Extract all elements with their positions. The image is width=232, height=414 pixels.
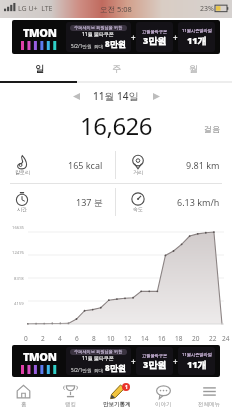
button[interactable]: Previous day xyxy=(67,87,85,105)
staticText: 1 xyxy=(125,384,128,391)
staticText: 11월 14일 xyxy=(93,89,139,103)
staticText: 11개 xyxy=(187,358,207,370)
staticText: 홈 xyxy=(21,401,27,408)
button[interactable]: TMON xyxy=(12,345,220,377)
staticText: 주 xyxy=(112,63,121,74)
button[interactable]: 이야기 xyxy=(140,378,186,414)
staticText: 12 xyxy=(124,334,132,343)
staticText: 137 분 xyxy=(76,196,103,208)
button[interactable]: 시간 xyxy=(0,184,115,220)
button[interactable]: 랭킹 xyxy=(47,378,94,414)
staticText: 고월물락구온 xyxy=(142,29,168,34)
staticText: 시간 xyxy=(17,206,27,212)
staticText: 수퍼세이브 회원님을 위한 xyxy=(74,349,123,355)
staticText: 18 xyxy=(175,334,183,343)
button[interactable]: 일 xyxy=(0,56,78,81)
button[interactable]: TMON xyxy=(12,20,220,54)
staticText: 14 xyxy=(141,334,149,343)
staticText: + xyxy=(173,356,178,367)
staticText: 11월 물타쿠폰 xyxy=(82,31,115,38)
staticText: 전체메뉴 xyxy=(198,401,220,408)
staticText: 일 xyxy=(35,63,44,74)
staticText: 16 xyxy=(158,334,166,343)
staticText: 4 xyxy=(58,334,62,343)
staticText: 랭킹 xyxy=(65,401,76,408)
staticText: 속도 xyxy=(133,206,143,212)
staticText: 만보기통계 xyxy=(103,401,131,408)
staticText: 8318 xyxy=(14,276,24,282)
staticText: 11월 물타쿠폰 xyxy=(82,355,115,362)
staticText: + xyxy=(131,356,136,367)
staticText: 16,626 xyxy=(80,109,153,141)
staticText: 수퍼세이브 회원님을 위한 xyxy=(74,25,123,31)
staticText: 3만원 xyxy=(143,358,167,370)
staticText: 고월물락구온 xyxy=(142,353,168,358)
staticText: 5/2/1만원 최대 xyxy=(71,43,105,49)
staticText: 22 xyxy=(209,334,217,343)
staticText: + xyxy=(131,32,136,43)
staticText: 3만원 xyxy=(143,34,167,46)
button[interactable]: 홈 xyxy=(0,378,47,414)
staticText: TMON xyxy=(23,25,57,40)
button[interactable]: 전체메뉴 xyxy=(186,378,232,414)
staticText: 11월시즌열라덜 xyxy=(182,352,212,358)
staticText: 월 xyxy=(189,63,198,74)
staticText: 9.81 km xyxy=(186,159,220,171)
staticText: 2 xyxy=(41,334,45,343)
staticText: 5/2/1만원 최대 xyxy=(71,367,105,373)
button[interactable]: 칼로리 xyxy=(0,147,115,183)
staticText: 이야기 xyxy=(155,401,172,408)
staticText: 11월시즌열라덜 xyxy=(182,28,212,34)
staticText: 10 xyxy=(107,334,115,343)
staticText: 12476 xyxy=(12,250,24,256)
staticText: 칼로리 xyxy=(15,169,30,175)
staticText: 거리 xyxy=(133,169,143,175)
button[interactable]: 거리 xyxy=(116,147,232,183)
staticText: 4159 xyxy=(14,301,24,307)
staticText: LG U+ LTE xyxy=(18,4,53,14)
staticText: + xyxy=(173,32,178,43)
staticText: 8만원 xyxy=(105,362,126,373)
staticText: 6 xyxy=(75,334,79,343)
staticText: 24 xyxy=(222,334,230,343)
staticText: 20 xyxy=(192,334,200,343)
staticText: 6.13 km/h xyxy=(177,196,220,208)
staticText: 오전 5:08 xyxy=(100,4,132,14)
staticText: 0 xyxy=(24,334,28,343)
staticText: TMON xyxy=(23,349,57,364)
staticText: 16635 xyxy=(12,225,24,231)
staticText: 8만원 xyxy=(105,38,126,49)
staticText: 8 xyxy=(92,334,96,343)
button[interactable]: 월 xyxy=(155,56,232,81)
button[interactable]: 주 xyxy=(78,56,155,81)
button[interactable]: 속도 xyxy=(116,184,232,220)
button[interactable]: Next day xyxy=(147,87,165,105)
staticText: 11개 xyxy=(187,34,207,46)
staticText: 걸음 xyxy=(204,124,220,134)
staticText: 165 kcal xyxy=(68,159,103,171)
button[interactable]: 1 xyxy=(94,378,140,414)
staticText: 23% xyxy=(200,4,214,14)
